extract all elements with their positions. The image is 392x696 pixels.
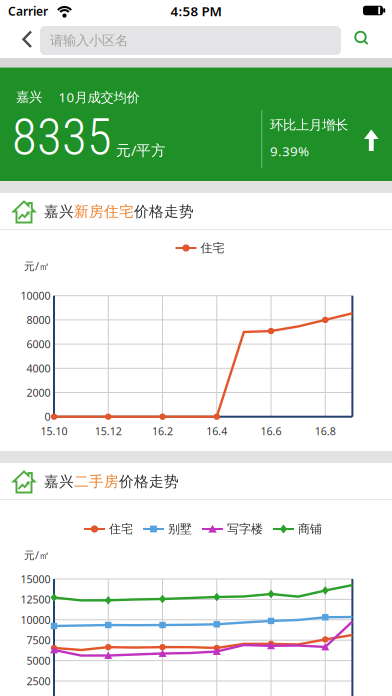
staticText: 住宅 xyxy=(200,241,224,255)
staticText: 写字楼 xyxy=(227,522,263,536)
staticText: 9.39% xyxy=(270,142,309,160)
staticText: 0 xyxy=(44,410,50,424)
staticText: 别墅 xyxy=(168,522,192,536)
button[interactable]: 请输入小区名 xyxy=(0,20,392,58)
staticText: 4:58 PM xyxy=(170,2,221,20)
staticText: 12500 xyxy=(20,592,50,606)
button[interactable]: Back xyxy=(0,20,392,58)
staticText: 元/㎡ xyxy=(24,548,50,562)
staticText: 5000 xyxy=(26,653,50,668)
staticText: 2500 xyxy=(26,674,50,688)
staticText: 8335 xyxy=(12,107,112,167)
staticText: 10月成交均价 xyxy=(58,88,139,106)
staticText: 元/㎡ xyxy=(24,259,50,273)
staticText: 新房住宅 xyxy=(74,202,134,220)
staticText: 15000 xyxy=(20,572,50,586)
button[interactable]: Search xyxy=(0,20,392,58)
staticText: 住宅 xyxy=(109,522,133,536)
staticText: 7500 xyxy=(26,633,50,647)
staticText: 15.12 xyxy=(95,424,122,438)
staticText: 元/平方 xyxy=(116,140,166,160)
staticText: 16.6 xyxy=(260,424,281,438)
staticText: 嘉兴 xyxy=(44,202,74,220)
staticText: 二手房 xyxy=(74,472,119,490)
staticText: 10000 xyxy=(20,289,50,303)
staticText: 价格走势 xyxy=(134,202,194,220)
staticText: 8000 xyxy=(26,313,50,327)
staticText: 16.2 xyxy=(152,424,173,438)
staticText: Carrier xyxy=(8,3,48,19)
staticText: 嘉兴 xyxy=(16,89,42,105)
staticText: 2000 xyxy=(26,385,50,400)
staticText: 16.8 xyxy=(315,424,336,438)
staticText: 6000 xyxy=(26,337,50,351)
staticText: 15.10 xyxy=(40,424,67,438)
staticText: 16.4 xyxy=(206,424,227,438)
staticText: 环比上月增长 xyxy=(270,117,348,133)
staticText: 4000 xyxy=(26,361,50,375)
staticText: 价格走势 xyxy=(119,472,179,490)
staticText: 请输入小区名 xyxy=(50,32,128,49)
staticText: 10000 xyxy=(20,613,50,627)
staticText: 嘉兴 xyxy=(44,472,74,490)
staticText: 商铺 xyxy=(298,522,322,536)
